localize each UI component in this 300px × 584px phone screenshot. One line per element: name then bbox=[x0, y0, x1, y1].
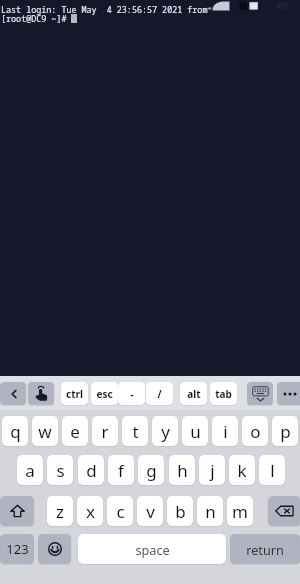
staticText: n bbox=[205, 500, 216, 523]
staticText: m bbox=[232, 500, 248, 523]
button[interactable]: a bbox=[17, 455, 43, 485]
button[interactable]: x bbox=[77, 496, 103, 526]
button[interactable]: Hide keyboard bbox=[247, 382, 273, 405]
button[interactable]: Terminal output bbox=[0, 0, 300, 376]
staticText: i bbox=[223, 420, 228, 443]
button[interactable]: n bbox=[197, 496, 223, 526]
button[interactable]: Previous bbox=[0, 382, 26, 405]
staticText: [root@DC9 ~]# bbox=[1, 13, 67, 24]
button[interactable]: v bbox=[137, 496, 163, 526]
button[interactable]: - bbox=[118, 382, 145, 405]
button[interactable]: s bbox=[47, 455, 73, 485]
staticText: esc bbox=[96, 387, 113, 401]
staticText: p bbox=[280, 420, 291, 443]
staticText: / bbox=[157, 387, 162, 401]
button[interactable]: Emoji bbox=[38, 534, 71, 564]
staticText: s bbox=[56, 459, 65, 482]
button[interactable]: h bbox=[169, 455, 195, 485]
button[interactable]: g bbox=[138, 455, 164, 485]
button[interactable]: l bbox=[259, 455, 285, 485]
button[interactable]: tab bbox=[210, 382, 237, 405]
staticText: - bbox=[130, 387, 134, 401]
staticText: o bbox=[250, 420, 261, 443]
button[interactable]: y bbox=[152, 416, 178, 446]
button[interactable]: o bbox=[242, 416, 268, 446]
staticText: c bbox=[116, 500, 125, 523]
button[interactable]: z bbox=[47, 496, 73, 526]
button[interactable]: / bbox=[146, 382, 173, 405]
staticText: k bbox=[237, 459, 247, 482]
button[interactable]: q bbox=[2, 416, 28, 446]
staticText: q bbox=[10, 420, 21, 443]
staticText: w bbox=[38, 420, 52, 443]
staticText: l bbox=[270, 459, 275, 482]
button[interactable]: Touch mode bbox=[28, 382, 54, 405]
button[interactable]: i bbox=[212, 416, 238, 446]
button[interactable]: space bbox=[78, 534, 226, 564]
staticText: u bbox=[190, 420, 201, 443]
button[interactable]: alt bbox=[180, 382, 207, 405]
button[interactable]: u bbox=[182, 416, 208, 446]
staticText: e bbox=[70, 420, 80, 443]
staticText: ctrl bbox=[66, 387, 83, 401]
staticText: space bbox=[135, 541, 170, 558]
staticText: j bbox=[210, 459, 215, 482]
staticText: d bbox=[86, 459, 97, 482]
button[interactable]: j bbox=[199, 455, 225, 485]
staticText: v bbox=[146, 500, 155, 523]
button[interactable]: f bbox=[108, 455, 134, 485]
staticText: tab bbox=[215, 387, 232, 401]
button[interactable]: c bbox=[107, 496, 133, 526]
button[interactable]: Delete bbox=[268, 496, 300, 526]
button[interactable]: esc bbox=[91, 382, 118, 405]
button[interactable]: e bbox=[62, 416, 88, 446]
staticText: return bbox=[246, 541, 284, 558]
button[interactable]: k bbox=[229, 455, 255, 485]
staticText: Last login: Tue May 4 23:56:57 2021 from bbox=[1, 4, 208, 15]
button[interactable]: Shift bbox=[0, 496, 34, 526]
button[interactable]: More options bbox=[277, 382, 300, 405]
staticText: 123 bbox=[6, 540, 29, 558]
staticText: h bbox=[177, 459, 188, 482]
staticText: y bbox=[161, 420, 170, 443]
button[interactable]: ctrl bbox=[61, 382, 88, 405]
staticText: b bbox=[175, 500, 186, 523]
button[interactable]: r bbox=[92, 416, 118, 446]
button[interactable]: w bbox=[32, 416, 58, 446]
button[interactable]: p bbox=[272, 416, 298, 446]
staticText: r bbox=[101, 420, 109, 443]
staticText: x bbox=[86, 500, 95, 523]
button[interactable]: m bbox=[227, 496, 253, 526]
button[interactable]: 123 bbox=[0, 534, 34, 564]
button[interactable]: d bbox=[78, 455, 104, 485]
staticText: t bbox=[132, 420, 139, 443]
staticText: z bbox=[56, 500, 64, 523]
button[interactable]: b bbox=[167, 496, 193, 526]
staticText: g bbox=[146, 459, 157, 482]
button[interactable]: return bbox=[230, 534, 300, 564]
staticText: a bbox=[25, 459, 35, 482]
staticText: alt bbox=[187, 387, 201, 401]
button[interactable]: t bbox=[122, 416, 148, 446]
staticText: f bbox=[118, 459, 124, 482]
